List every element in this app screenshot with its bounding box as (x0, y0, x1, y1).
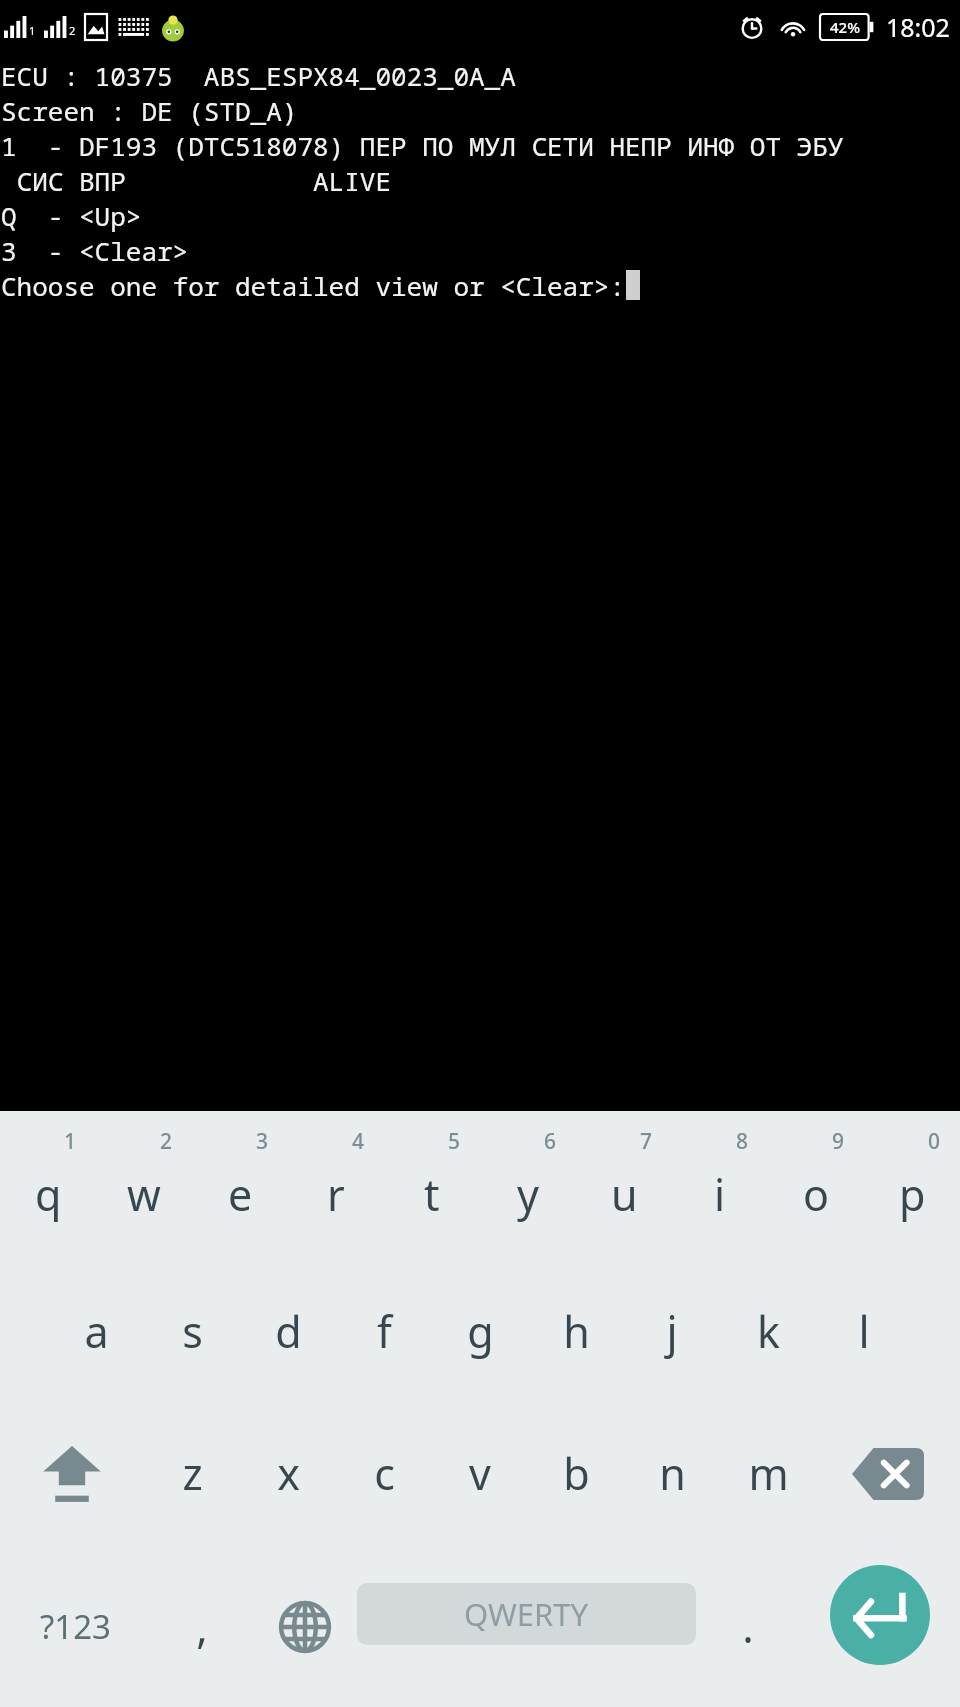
staticText: Choose one for detailed view or <Clear>: (1, 268, 626, 303)
staticText: d (275, 1302, 302, 1361)
staticText: Screen : DE (STD_A) (1, 93, 298, 128)
button[interactable]: 4 (288, 1111, 384, 1261)
staticText: k (757, 1302, 780, 1361)
staticText: y (517, 1165, 539, 1224)
staticText: , (196, 1597, 208, 1656)
staticText: СИС ВПР ALIVE (1, 163, 392, 198)
staticText: p (899, 1165, 926, 1224)
staticText: f (377, 1302, 392, 1361)
staticText: i (714, 1165, 726, 1224)
button[interactable]: v (432, 1401, 528, 1546)
button[interactable]: n (624, 1401, 720, 1546)
staticText: z (182, 1444, 203, 1503)
staticText: b (563, 1444, 590, 1503)
button[interactable]: ?123 (0, 1546, 150, 1707)
staticText: 4 (352, 1127, 365, 1156)
staticText: u (611, 1165, 638, 1224)
staticText: x (277, 1444, 300, 1503)
staticText: 7 (640, 1127, 653, 1156)
button[interactable]: s (144, 1261, 240, 1401)
staticText: 9 (832, 1127, 845, 1156)
staticText: 1 - DF193 (DTC518078) ПЕР ПО МУЛ СЕТИ НЕ… (1, 128, 844, 163)
staticText: . (742, 1597, 754, 1656)
button[interactable]: c (336, 1401, 432, 1546)
staticText: q (35, 1165, 62, 1224)
button[interactable]: 7 (576, 1111, 672, 1261)
button[interactable]: Backspace (816, 1401, 960, 1546)
staticText: o (803, 1165, 830, 1224)
staticText: 2 (69, 23, 76, 38)
staticText: m (748, 1444, 789, 1503)
button[interactable]: 1 (0, 1111, 96, 1261)
staticText: s (182, 1302, 203, 1361)
staticText: h (563, 1302, 590, 1361)
staticText: ?123 (40, 1604, 111, 1649)
button[interactable]: 5 (384, 1111, 480, 1261)
staticText: 8 (736, 1127, 749, 1156)
button[interactable]: . (696, 1546, 800, 1707)
button[interactable]: , (150, 1546, 253, 1707)
button[interactable]: 6 (480, 1111, 576, 1261)
staticText: g (467, 1302, 494, 1361)
staticText: 2 (160, 1127, 173, 1156)
staticText: 6 (544, 1127, 557, 1156)
staticText: w (127, 1165, 161, 1224)
staticText: t (424, 1165, 440, 1224)
staticText: 1 (29, 23, 36, 38)
button[interactable]: Enter (800, 1546, 960, 1707)
button[interactable]: j (624, 1261, 720, 1401)
button[interactable]: k (720, 1261, 816, 1401)
staticText: 3 - <Clear> (1, 233, 189, 268)
staticText: 42% (830, 17, 860, 37)
staticText: c (374, 1444, 395, 1503)
button[interactable]: b (528, 1401, 624, 1546)
button[interactable]: Change language (253, 1546, 357, 1707)
button[interactable]: z (144, 1401, 240, 1546)
button[interactable]: 8 (672, 1111, 768, 1261)
button[interactable]: g (432, 1261, 528, 1401)
staticText: Q - <Up> (1, 198, 142, 233)
button[interactable]: l (816, 1261, 912, 1401)
staticText: v (469, 1444, 491, 1503)
staticText: 0 (928, 1127, 941, 1156)
button[interactable]: m (720, 1401, 816, 1546)
button[interactable]: Shift (0, 1401, 144, 1546)
staticText: l (858, 1302, 870, 1361)
button[interactable]: 2 (96, 1111, 192, 1261)
button[interactable]: 9 (768, 1111, 864, 1261)
button[interactable]: d (240, 1261, 336, 1401)
staticText: 5 (448, 1127, 461, 1156)
button[interactable]: a (48, 1261, 144, 1401)
staticText: QWERTY (464, 1593, 589, 1635)
staticText: 18:02 (886, 10, 950, 44)
staticText: e (228, 1165, 253, 1224)
button[interactable]: 3 (192, 1111, 288, 1261)
staticText: j (666, 1302, 678, 1361)
staticText: 3 (256, 1127, 269, 1156)
button[interactable]: 0 (864, 1111, 960, 1261)
button[interactable]: f (336, 1261, 432, 1401)
staticText: n (659, 1444, 686, 1503)
staticText: 1 (64, 1127, 77, 1156)
button[interactable]: h (528, 1261, 624, 1401)
staticText: r (327, 1165, 345, 1224)
staticText: a (84, 1302, 109, 1361)
button[interactable]: x (240, 1401, 336, 1546)
button[interactable]: QWERTY (357, 1546, 696, 1707)
staticText: ECU : 10375 ABS_ESPX84_0023_0A_A (1, 58, 516, 93)
